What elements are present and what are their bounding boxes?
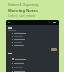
button[interactable]: [12, 66, 57, 68]
staticText: Kitchen & Organising: [8, 3, 39, 7]
button[interactable]: Add note: [51, 48, 57, 51]
button[interactable]: [12, 62, 57, 64]
staticText: Morning Notes: [8, 8, 38, 13]
button[interactable]: [12, 35, 57, 37]
button[interactable]: [12, 41, 57, 43]
button[interactable]: [12, 38, 57, 40]
staticText: Collect, sort, review: [8, 14, 36, 18]
button[interactable]: [12, 70, 57, 72]
button[interactable]: [12, 58, 59, 60]
button[interactable]: [12, 44, 57, 46]
button[interactable]: [12, 32, 57, 34]
